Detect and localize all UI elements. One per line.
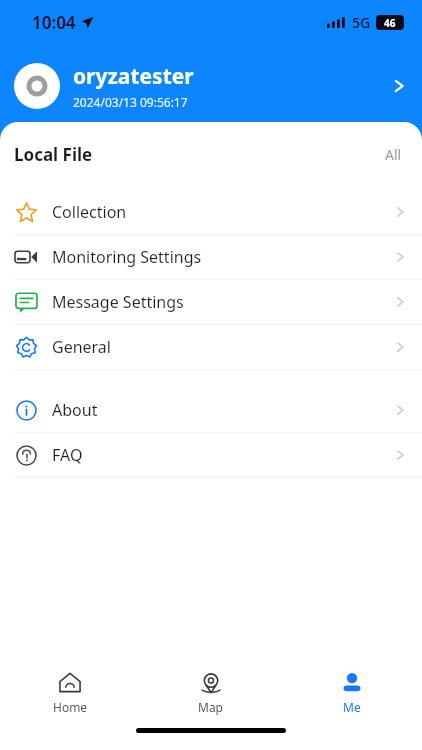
button[interactable]: General <box>0 325 422 369</box>
button[interactable]: FAQ <box>0 433 422 477</box>
staticText: General <box>52 336 111 358</box>
other: Map <box>199 671 223 695</box>
staticText: Home <box>53 699 88 715</box>
button[interactable]: Me <box>281 664 422 722</box>
button[interactable]: All <box>379 139 408 170</box>
staticText: oryzatester <box>73 62 194 91</box>
button[interactable]: Message Settings <box>0 280 422 324</box>
button[interactable]: Monitoring Settings <box>0 235 422 279</box>
staticText: Local File <box>14 143 93 166</box>
staticText: All <box>385 145 402 164</box>
staticText: About <box>52 399 98 421</box>
button[interactable]: Map <box>140 664 281 722</box>
button[interactable]: Collection <box>0 190 422 234</box>
button[interactable]: Home <box>0 664 140 722</box>
staticText: Monitoring Settings <box>52 246 202 268</box>
other: Home <box>58 671 82 695</box>
staticText: 10:04 <box>32 11 76 34</box>
staticText: Message Settings <box>52 291 184 313</box>
staticText: FAQ <box>52 444 83 466</box>
button[interactable]: About <box>0 388 422 432</box>
button[interactable]: oryzatester <box>0 56 422 116</box>
staticText: Me <box>343 699 361 715</box>
staticText: 2024/03/13 09:56:17 <box>73 94 188 110</box>
staticText: Map <box>198 699 223 715</box>
staticText: 46 <box>384 16 396 30</box>
staticText: 5G <box>352 13 371 32</box>
other: Me <box>340 671 364 695</box>
staticText: Collection <box>52 201 127 223</box>
